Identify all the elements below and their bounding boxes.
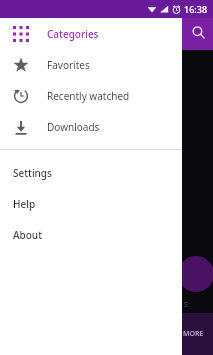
button[interactable]: Add bbox=[178, 256, 213, 292]
button[interactable]: Search bbox=[185, 19, 211, 45]
button[interactable]: Settings bbox=[0, 157, 182, 188]
staticText: Favorites bbox=[47, 58, 90, 72]
button[interactable]: Downloads bbox=[0, 111, 182, 142]
staticText: About bbox=[13, 228, 42, 242]
staticText: MORE bbox=[183, 329, 204, 339]
button[interactable]: Recently watched bbox=[0, 80, 182, 111]
staticText: 16:38 bbox=[184, 3, 208, 15]
staticText: Settings bbox=[13, 166, 52, 180]
button[interactable]: MORE bbox=[173, 313, 213, 355]
button[interactable]: Categories bbox=[0, 18, 182, 49]
staticText: S bbox=[184, 300, 188, 310]
button[interactable]: About bbox=[0, 219, 182, 250]
staticText: Help bbox=[13, 197, 36, 211]
button[interactable]: Favorites bbox=[0, 49, 182, 80]
staticText: Categories bbox=[47, 27, 99, 41]
button[interactable]: Help bbox=[0, 188, 182, 219]
staticText: Downloads bbox=[47, 120, 100, 134]
staticText: Recently watched bbox=[47, 89, 130, 103]
